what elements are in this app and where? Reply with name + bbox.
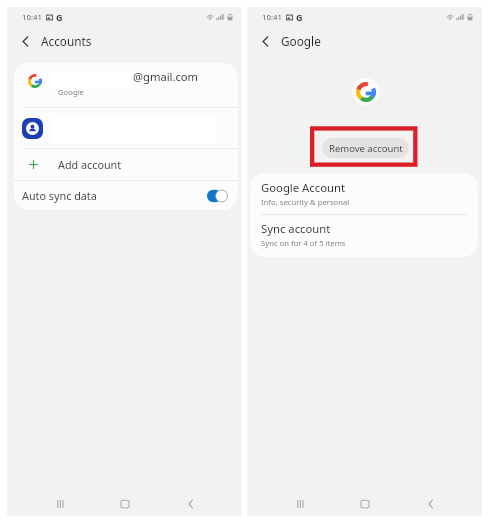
button[interactable]: Home (350, 489, 379, 518)
button[interactable]: Add account (14, 149, 238, 180)
staticText: Sync account (261, 221, 331, 236)
staticText: Google Account (261, 180, 346, 195)
button[interactable]: Back (416, 489, 445, 518)
staticText: Remove account (329, 142, 403, 155)
staticText: Auto sync data (22, 188, 97, 203)
staticText: 10:41 (22, 12, 42, 23)
button[interactable]: Recent apps (285, 489, 314, 518)
button[interactable]: Home (110, 489, 139, 518)
staticText: Google (58, 87, 84, 97)
staticText: Accounts (41, 33, 92, 49)
button[interactable]: Sync account (250, 215, 478, 254)
staticText: Info, security & personal (261, 197, 350, 207)
staticText: Sync on for 4 of 5 items (261, 238, 346, 248)
button[interactable]: Navigate up (257, 33, 273, 49)
button[interactable]: Recent apps (45, 489, 74, 518)
staticText: Google (281, 33, 321, 49)
staticText: G (296, 11, 303, 23)
button[interactable]: Navigate up (17, 33, 33, 49)
staticText: G (56, 11, 63, 23)
staticText: 10:41 (262, 12, 282, 23)
button[interactable]: Back (176, 489, 205, 518)
button[interactable]: @gmail.com (14, 63, 238, 107)
staticText: Add account (58, 157, 122, 172)
button[interactable]: Remove account (322, 138, 409, 158)
staticText: @gmail.com (133, 69, 199, 84)
button[interactable]: Auto sync data (14, 181, 238, 210)
button[interactable] (14, 108, 238, 148)
button[interactable]: Google Account (250, 173, 478, 214)
button[interactable]: Auto sync data toggle (207, 189, 228, 203)
